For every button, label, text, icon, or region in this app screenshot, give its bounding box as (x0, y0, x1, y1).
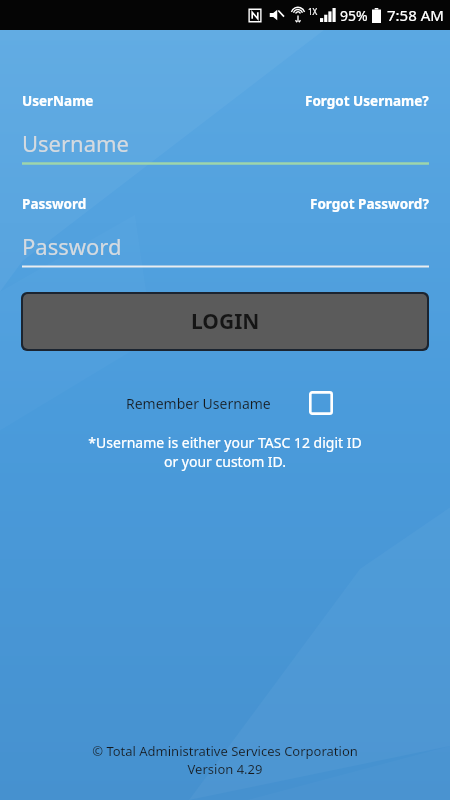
staticText: © Total Administrative Services Corporat… (20, 742, 430, 778)
other: Battery (372, 8, 381, 23)
staticText: 7:58 AM (387, 5, 444, 25)
button[interactable]: LOGIN (23, 294, 427, 349)
staticText: Password (22, 195, 87, 213)
button[interactable]: Password (22, 231, 429, 268)
staticText: 95% (340, 6, 368, 25)
staticText: Forgot Username? (305, 92, 429, 110)
other: NFC (248, 8, 262, 23)
other: Wi-Fi (291, 8, 305, 23)
other: Signal strength (320, 8, 336, 22)
staticText: UserName (22, 92, 94, 110)
staticText: Username (22, 128, 130, 158)
button[interactable]: Forgot Username? (305, 92, 429, 110)
other: Sound off (269, 8, 284, 22)
staticText: Remember Username (126, 394, 271, 413)
button[interactable]: Forgot Password? (310, 195, 429, 213)
staticText: Password (22, 231, 122, 261)
button[interactable]: Username (22, 128, 429, 165)
staticText: Forgot Password? (310, 195, 429, 213)
button[interactable]: Remember Username (126, 391, 430, 415)
staticText: *Username is either your TASC 12 digit I… (20, 433, 430, 471)
staticText: 1X (308, 6, 318, 17)
staticText: LOGIN (191, 307, 260, 336)
